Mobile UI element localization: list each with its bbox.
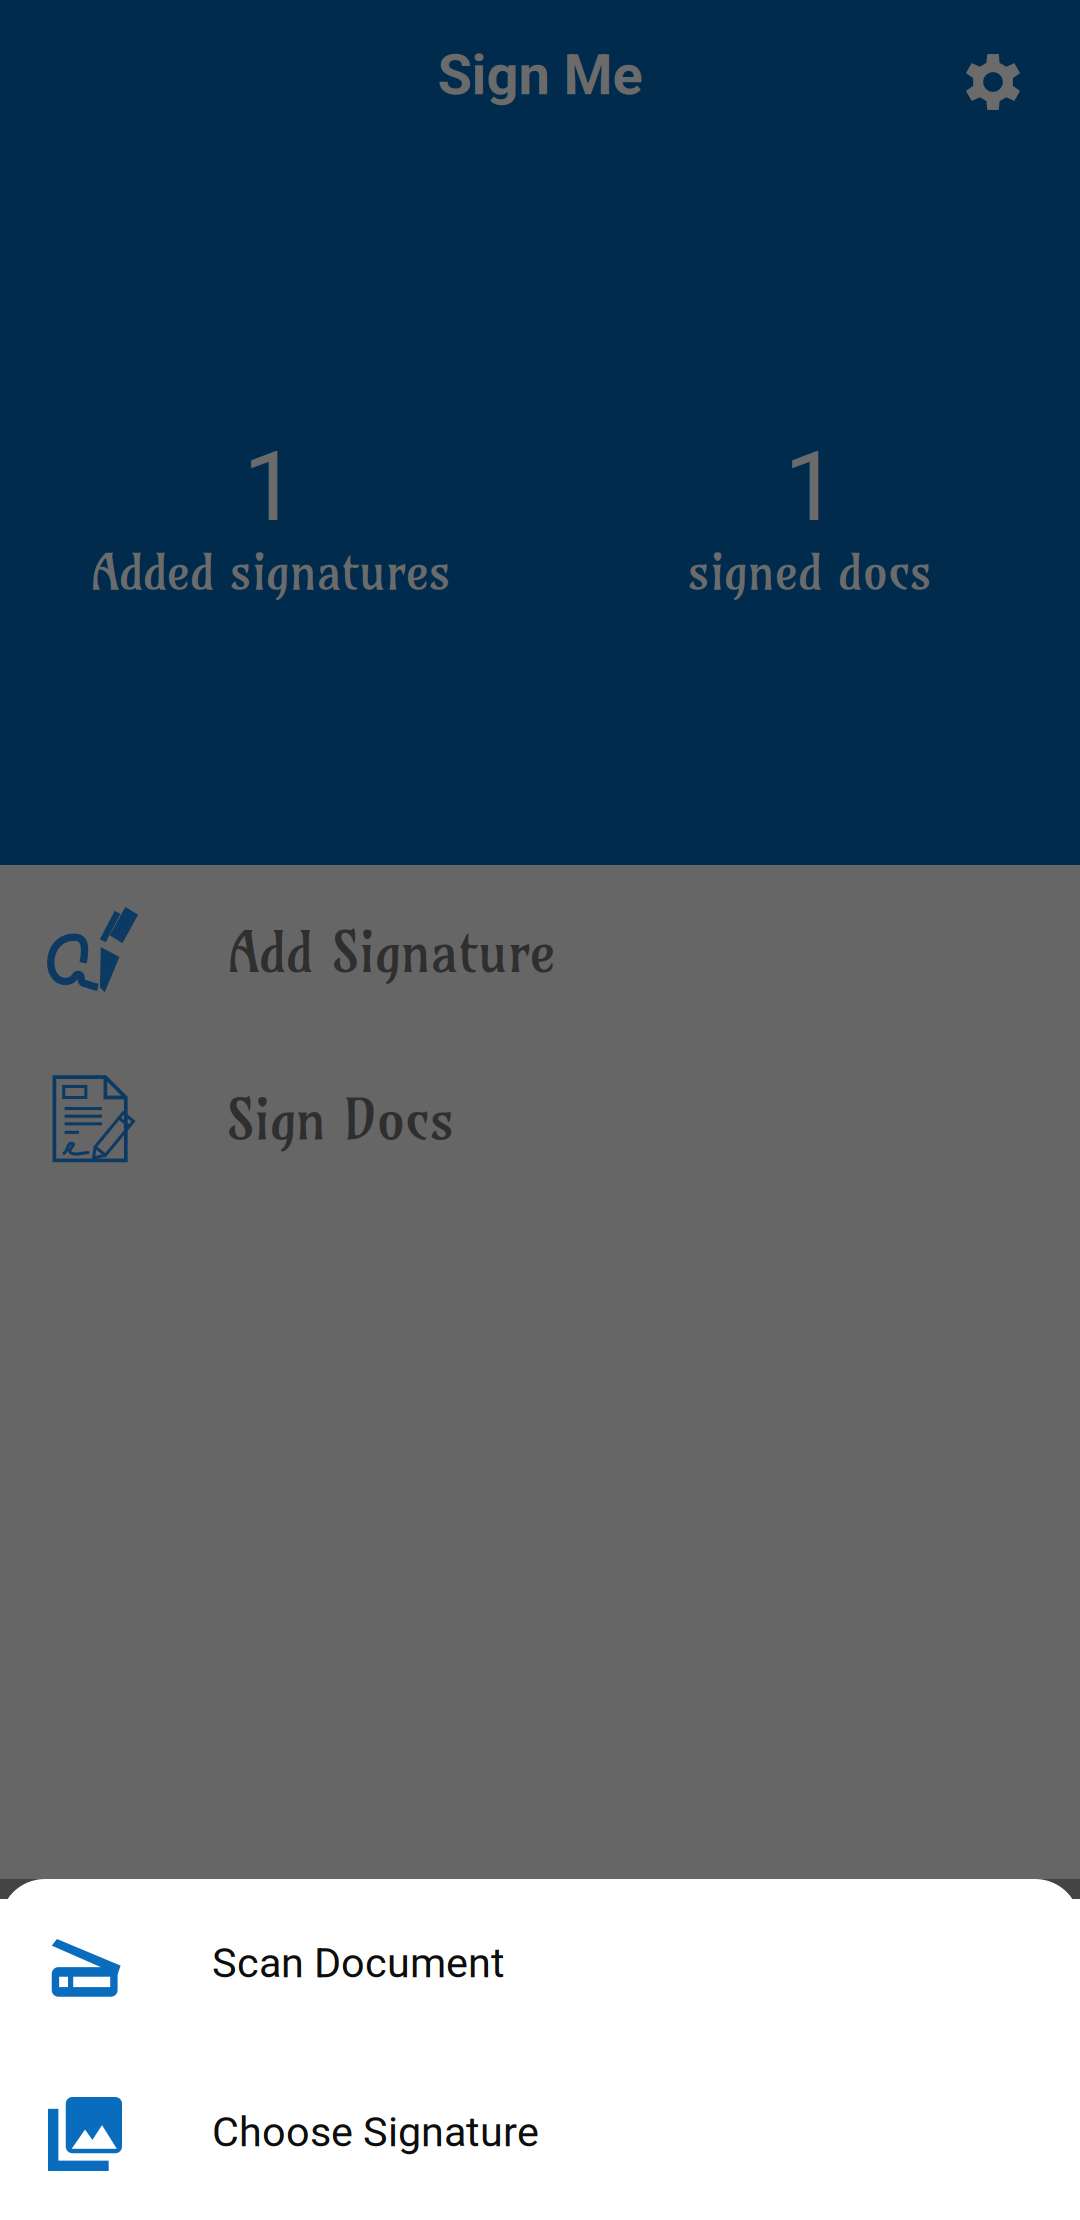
button[interactable]: Scan Document: [0, 1899, 1080, 2039]
button[interactable]: Add Signature: [0, 876, 1080, 1026]
staticText: Added signatures: [91, 541, 451, 603]
staticText: 1: [784, 431, 838, 543]
button[interactable]: Sign Docs: [0, 1053, 1080, 1203]
staticText: Sign Docs: [226, 1085, 454, 1154]
staticText: 1: [243, 431, 297, 543]
staticText: Add Signature: [228, 918, 556, 986]
staticText: Scan Document: [212, 1939, 505, 1987]
button[interactable]: Settings: [937, 26, 1049, 138]
staticText: Sign Me: [437, 42, 642, 108]
staticText: signed docs: [688, 541, 932, 603]
staticText: Choose Signature: [212, 2108, 539, 2156]
button[interactable]: Choose Signature: [0, 2059, 1080, 2199]
